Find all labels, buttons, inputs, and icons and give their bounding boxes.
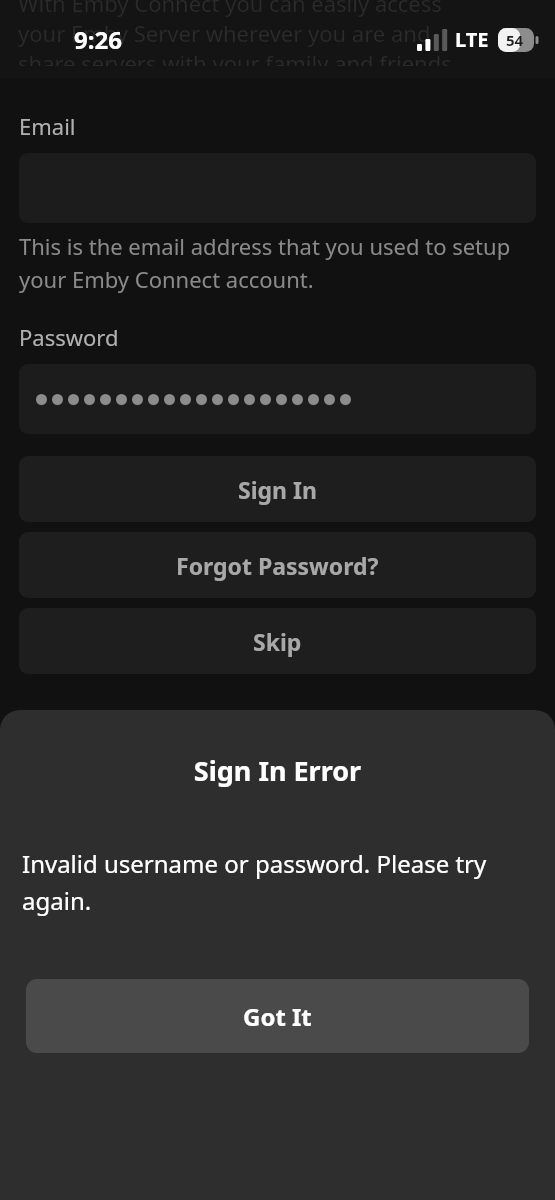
button[interactable]: [19, 364, 536, 434]
staticText: Invalid username or password. Please try…: [22, 847, 533, 917]
staticText: Sign In Error: [0, 752, 555, 789]
staticText: your Emby Server wherever you are and: [18, 18, 537, 48]
staticText: Password: [19, 322, 119, 352]
staticText: With Emby Connect you can easily access: [18, 0, 537, 18]
button[interactable]: Forgot Password?: [19, 532, 536, 598]
staticText: Got It: [243, 1000, 312, 1033]
staticText: This is the email address that you used …: [19, 231, 536, 294]
button[interactable]: Skip: [19, 608, 536, 674]
staticText: share servers with your family and frien…: [18, 48, 537, 66]
staticText: Email: [19, 111, 76, 141]
staticText: 54: [506, 30, 524, 50]
staticText: Sign In: [238, 474, 317, 505]
staticText: 9:26: [74, 23, 122, 56]
staticText: LTE: [455, 26, 489, 53]
staticText: Skip: [253, 626, 302, 657]
staticText: Forgot Password?: [176, 550, 379, 581]
button[interactable]: Sign In: [19, 456, 536, 522]
button[interactable]: Got It: [26, 979, 529, 1053]
